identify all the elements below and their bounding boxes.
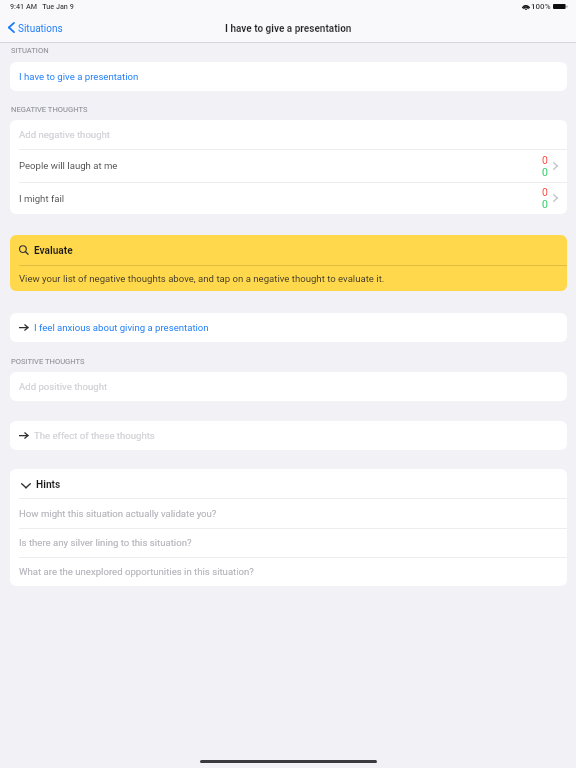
- staticText: NEGATIVE THOUGHTS: [11, 105, 88, 114]
- staticText: I have to give a presentation: [19, 71, 139, 82]
- staticText: Hints: [36, 479, 61, 491]
- staticText: 9:41 AM Tue Jan 9: [10, 2, 74, 10]
- staticText: I might fail: [19, 193, 65, 204]
- staticText: 0: [542, 186, 548, 198]
- button[interactable]: Back to Situations: [4, 17, 66, 39]
- staticText: Evaluate: [34, 245, 73, 257]
- button[interactable]: Open: [10, 313, 567, 342]
- staticText: I have to give a presentation: [225, 23, 352, 35]
- button[interactable]: People will laugh at me: [10, 149, 567, 182]
- staticText: Add negative thought: [19, 129, 110, 140]
- staticText: Is there any silver lining to this situa…: [19, 537, 192, 548]
- staticText: How might this situation actually valida…: [19, 508, 217, 519]
- other: Evaluate: [19, 245, 29, 255]
- staticText: 0: [542, 166, 548, 178]
- other: Open: [19, 323, 28, 332]
- staticText: People will laugh at me: [19, 160, 118, 171]
- other: Open thought: [553, 194, 558, 202]
- staticText: Situations: [18, 23, 63, 35]
- button[interactable]: Add negative thought: [10, 120, 567, 149]
- staticText: The effect of these thoughts: [34, 430, 155, 441]
- staticText: View your list of negative thoughts abov…: [19, 273, 385, 284]
- staticText: SITUATION: [11, 46, 49, 55]
- button[interactable]: How might this situation actually valida…: [10, 498, 567, 528]
- button[interactable]: I might fail: [10, 182, 567, 214]
- button[interactable]: I have to give a presentation: [10, 62, 567, 91]
- other: Wi-Fi: [522, 4, 530, 10]
- staticText: 0: [542, 198, 548, 210]
- staticText: I feel anxious about giving a presentati…: [34, 322, 209, 333]
- staticText: What are the unexplored opportunities in…: [19, 566, 254, 577]
- staticText: 0: [542, 154, 548, 166]
- staticText: 100%: [531, 2, 551, 11]
- other: Open: [19, 431, 28, 440]
- other: Collapse hints: [21, 480, 31, 490]
- staticText: Add positive thought: [19, 381, 108, 392]
- button[interactable]: Collapse hints: [10, 469, 567, 498]
- button[interactable]: Open: [10, 421, 567, 450]
- other: Open thought: [553, 162, 558, 170]
- button[interactable]: Add positive thought: [10, 372, 567, 401]
- staticText: POSITIVE THOUGHTS: [11, 357, 85, 366]
- button[interactable]: What are the unexplored opportunities in…: [10, 557, 567, 586]
- button[interactable]: Evaluate: [10, 235, 567, 265]
- button[interactable]: Is there any silver lining to this situa…: [10, 528, 567, 557]
